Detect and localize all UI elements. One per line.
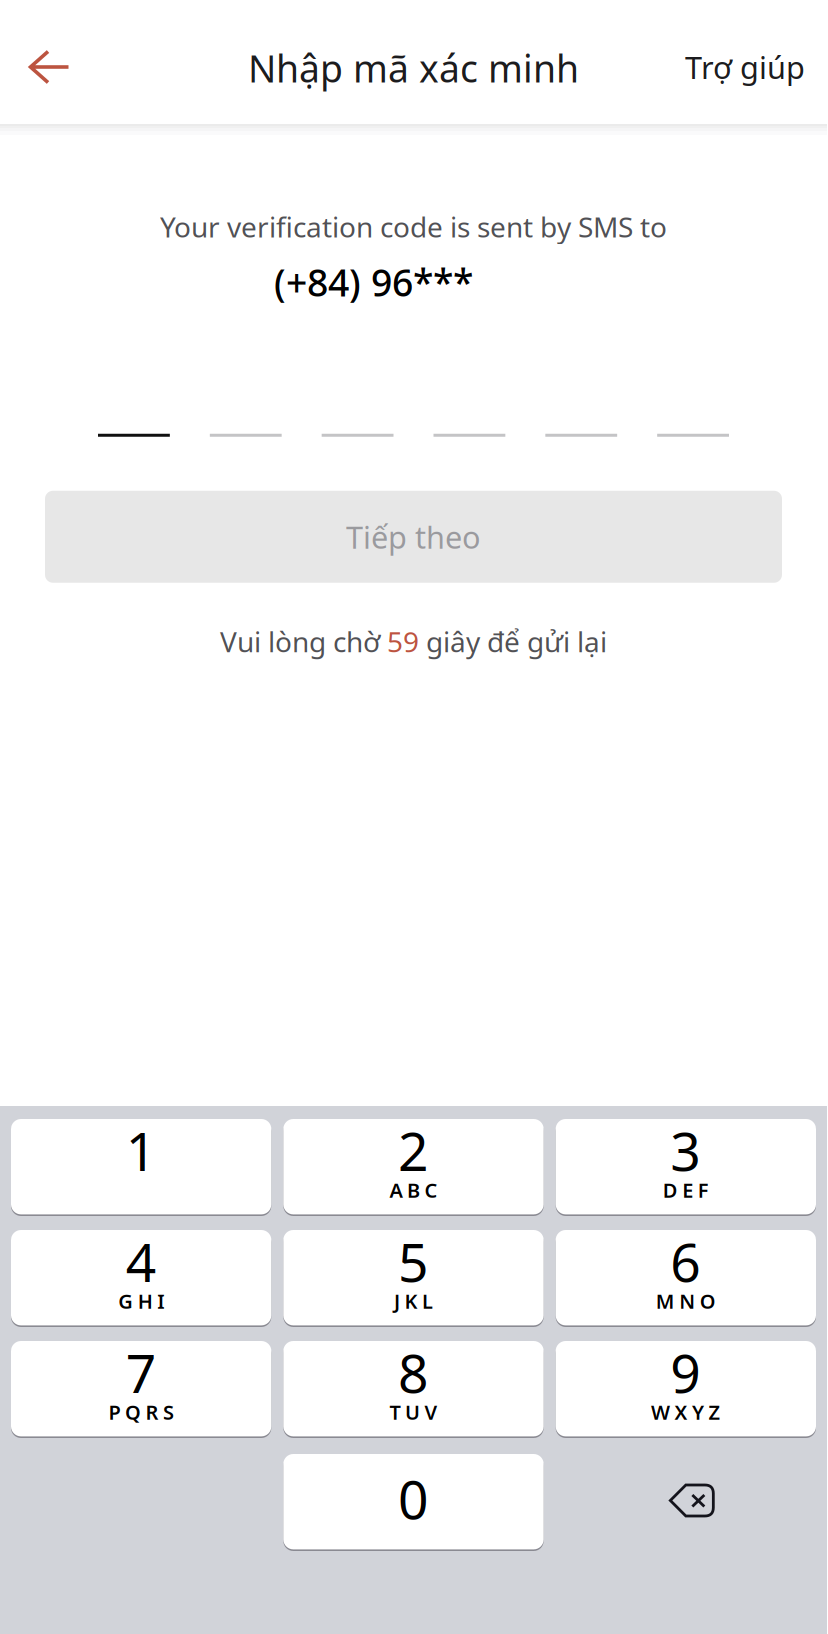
staticText: (+84) 96***: [274, 257, 473, 307]
staticText: DEF: [663, 1177, 709, 1203]
staticText: 7: [126, 1337, 157, 1408]
button[interactable]: 1: [11, 1119, 271, 1216]
staticText: Nhập mã xác minh: [248, 43, 579, 93]
button[interactable]: Tiếp theo: [45, 491, 782, 583]
button[interactable]: 6: [556, 1230, 816, 1327]
staticText: GHI: [118, 1288, 164, 1314]
button[interactable]: Trợ giúp: [661, 18, 827, 106]
button[interactable]: Back: [0, 20, 95, 104]
button[interactable]: 4: [11, 1230, 271, 1327]
button[interactable]: Delete: [556, 1454, 816, 1551]
staticText: WXYZ: [651, 1399, 721, 1425]
button[interactable]: 8: [283, 1341, 544, 1438]
staticText: 1: [126, 1115, 157, 1186]
staticText: Tiếp theo: [346, 516, 481, 557]
button[interactable]: 0: [283, 1454, 544, 1551]
staticText: TUV: [389, 1399, 437, 1425]
staticText: 8: [398, 1337, 429, 1408]
button[interactable]: 5: [283, 1230, 544, 1327]
staticText: 2: [398, 1115, 429, 1186]
staticText: Trợ giúp: [685, 47, 805, 87]
button[interactable]: 2: [283, 1119, 544, 1216]
staticText: Vui lòng chờ: [220, 623, 387, 660]
staticText: 59: [387, 623, 419, 660]
button[interactable]: 9: [556, 1341, 816, 1438]
staticText: Your verification code is sent by SMS to: [160, 208, 667, 245]
staticText: 6: [670, 1226, 701, 1297]
staticText: JKL: [394, 1288, 433, 1314]
staticText: 0: [398, 1463, 429, 1534]
staticText: 9: [670, 1337, 701, 1408]
staticText: giây để gửi lại: [419, 623, 607, 660]
staticText: 4: [126, 1226, 157, 1297]
staticText: MNO: [656, 1288, 716, 1314]
button[interactable]: 3: [556, 1119, 816, 1216]
staticText: 5: [398, 1226, 429, 1297]
staticText: ABC: [389, 1177, 437, 1203]
staticText: PQRS: [108, 1399, 174, 1425]
staticText: 3: [670, 1115, 701, 1186]
button[interactable]: 7: [11, 1341, 271, 1438]
